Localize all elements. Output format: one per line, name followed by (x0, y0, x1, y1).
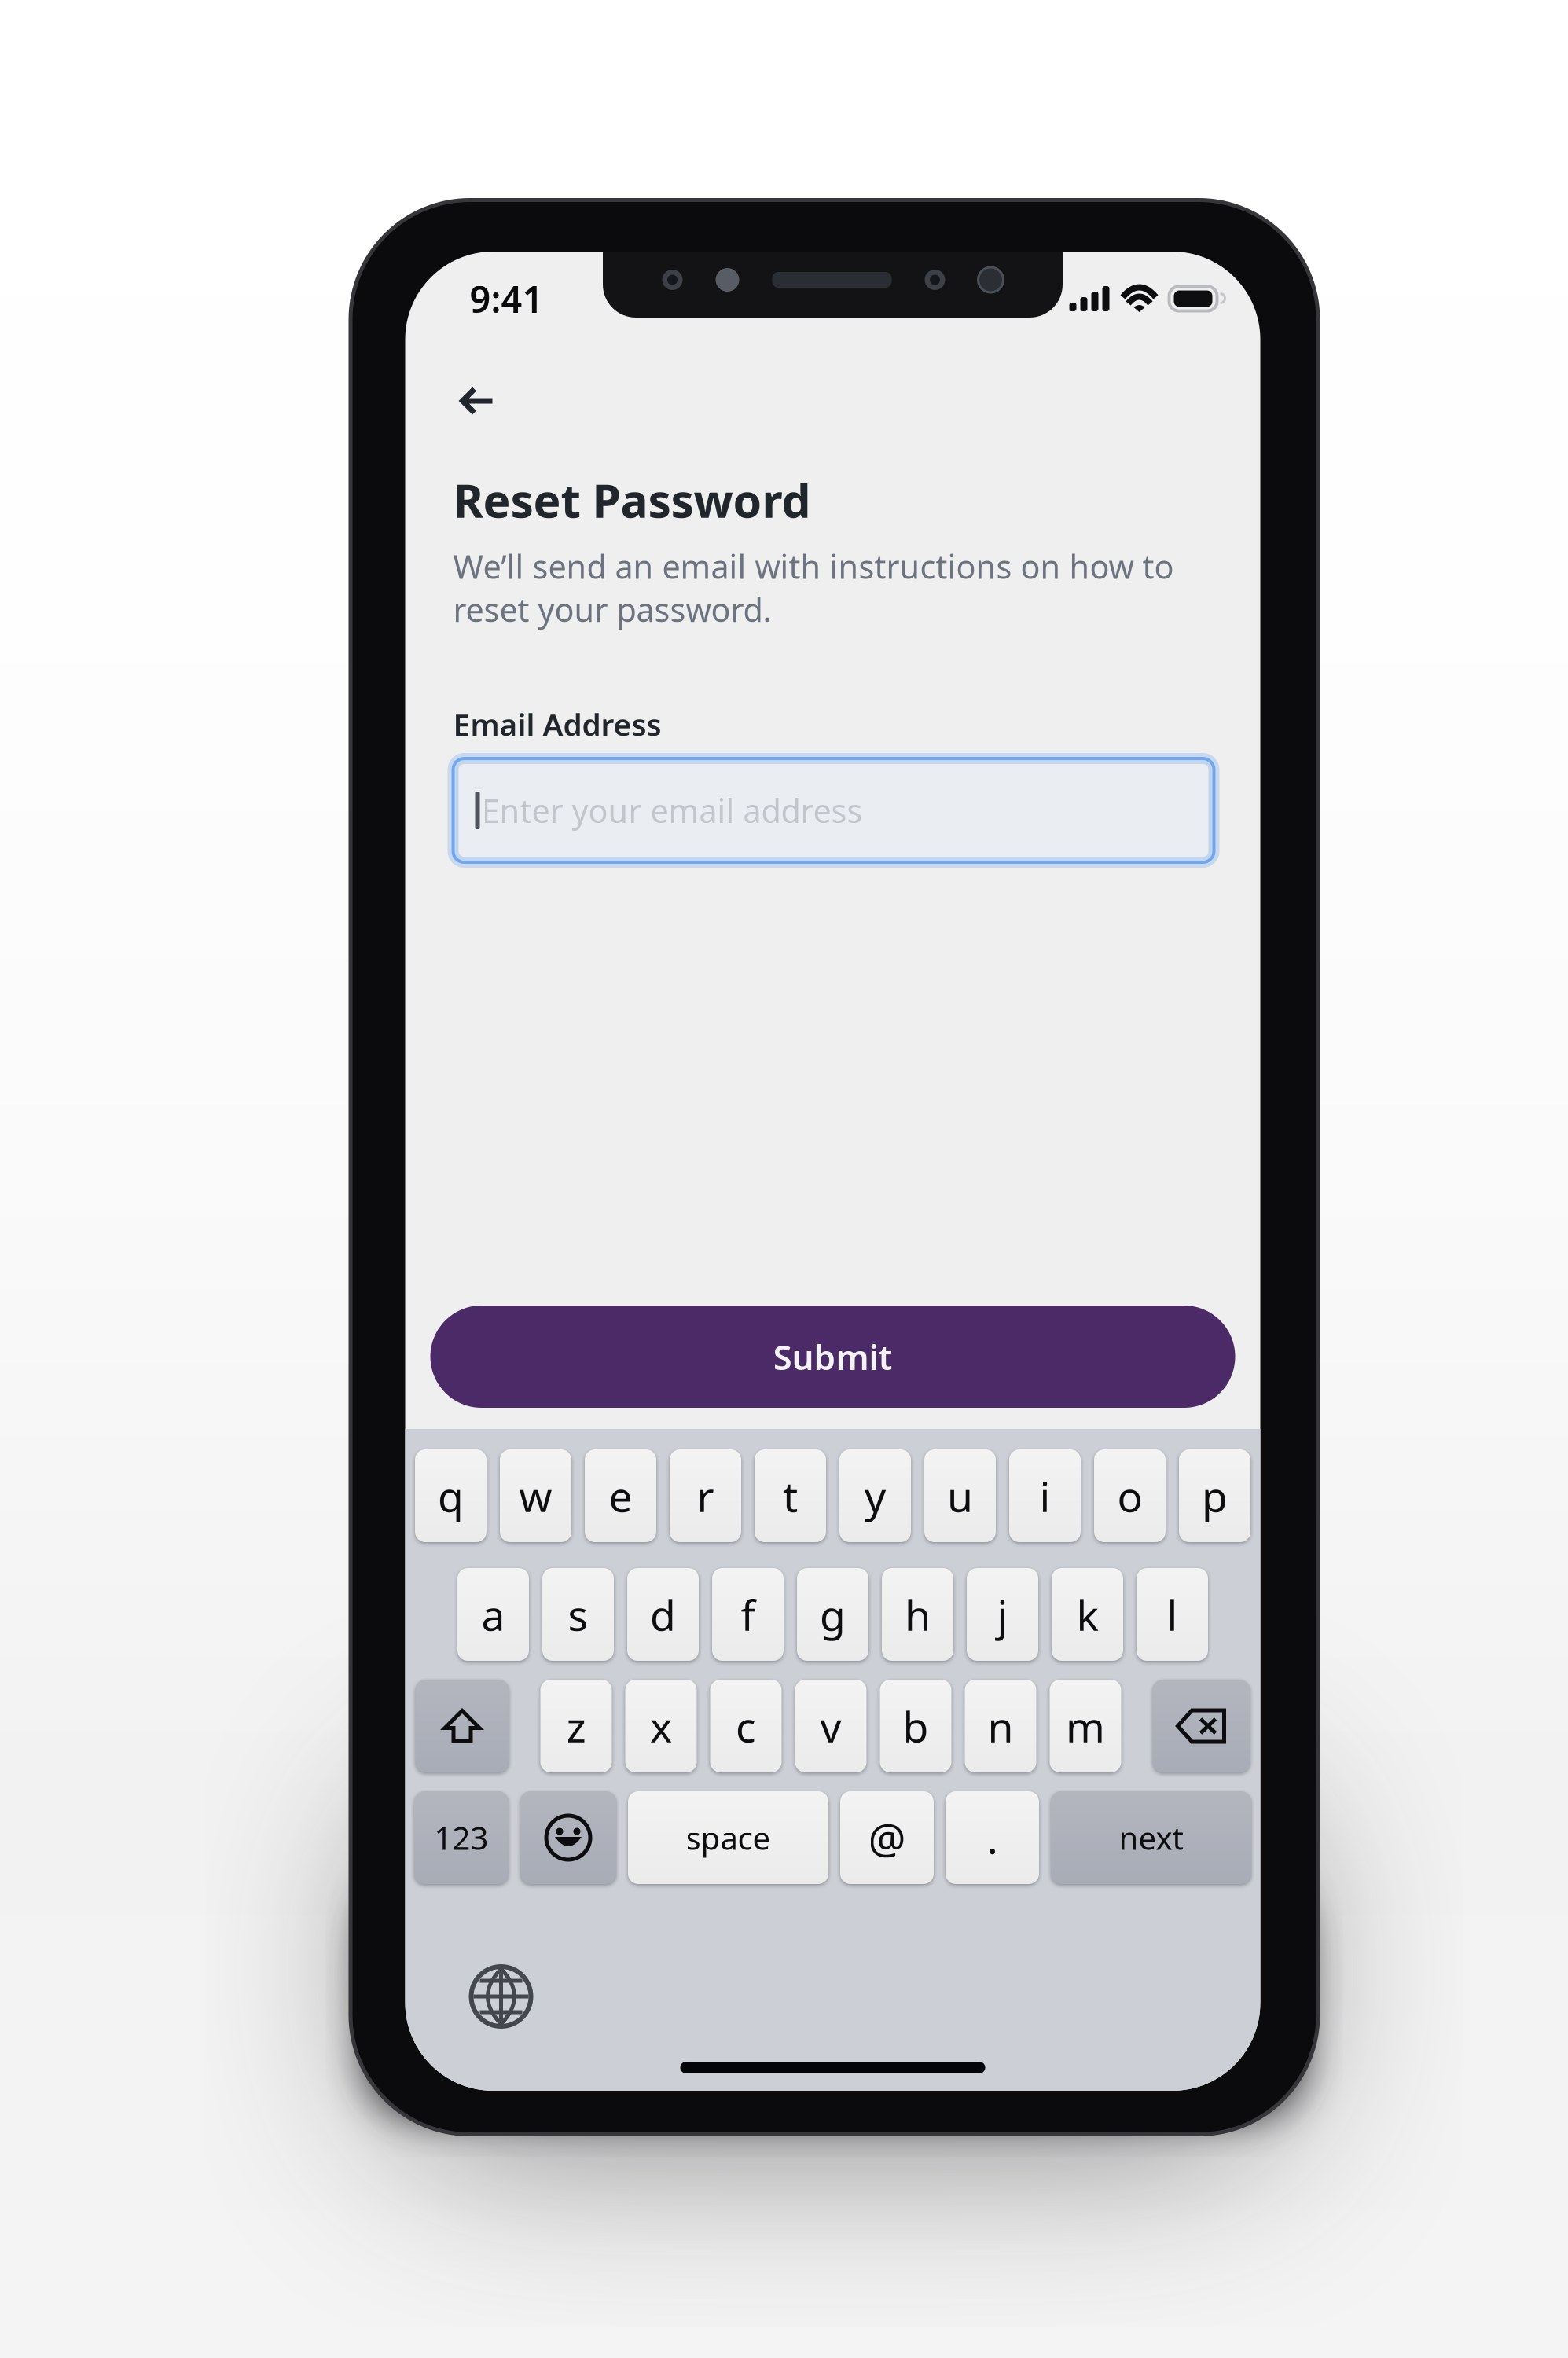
button[interactable]: j (967, 1568, 1038, 1661)
button[interactable]: Shift (415, 1680, 509, 1772)
staticText: i (1039, 1468, 1050, 1524)
button[interactable]: Next keyboard (471, 1967, 531, 2026)
staticText: c (736, 1698, 756, 1754)
staticText: t (783, 1468, 798, 1524)
button[interactable]: b (880, 1680, 951, 1772)
staticText: Enter your email address (481, 789, 863, 832)
button[interactable]: Back (446, 371, 507, 431)
button[interactable]: Emoji (520, 1791, 616, 1884)
button[interactable]: u (924, 1449, 996, 1542)
staticText: next (1119, 1817, 1183, 1858)
staticText: q (438, 1468, 464, 1524)
button[interactable]: p (1179, 1449, 1250, 1542)
staticText: u (947, 1468, 973, 1524)
button[interactable]: n (965, 1680, 1036, 1772)
button[interactable]: v (795, 1680, 867, 1772)
button[interactable]: w (500, 1449, 571, 1542)
button[interactable]: . (946, 1791, 1039, 1884)
staticText: l (1167, 1587, 1178, 1642)
button[interactable]: space (628, 1791, 828, 1884)
staticText: a (481, 1587, 505, 1642)
button[interactable]: c (710, 1680, 782, 1772)
staticText: h (905, 1587, 931, 1642)
staticText: Email Address (453, 704, 661, 744)
button[interactable]: d (627, 1568, 699, 1661)
staticText: k (1076, 1587, 1098, 1642)
button[interactable]: x (625, 1680, 697, 1772)
button[interactable]: h (882, 1568, 953, 1661)
button[interactable]: a (457, 1568, 529, 1661)
button[interactable]: o (1094, 1449, 1166, 1542)
staticText: w (519, 1468, 552, 1524)
staticText: s (568, 1587, 588, 1642)
button[interactable]: g (797, 1568, 868, 1661)
button[interactable]: l (1137, 1568, 1208, 1661)
staticText: v (820, 1698, 841, 1754)
staticText: z (566, 1698, 586, 1754)
staticText: f (741, 1587, 755, 1642)
button[interactable]: f (712, 1568, 784, 1661)
staticText: y (865, 1468, 886, 1524)
staticText: n (988, 1698, 1014, 1754)
staticText: x (650, 1698, 672, 1754)
staticText: space (686, 1817, 771, 1858)
staticText: b (903, 1698, 929, 1754)
staticText: . (987, 1810, 998, 1865)
staticText: r (697, 1468, 714, 1524)
button[interactable]: 123 (414, 1791, 509, 1884)
staticText: 123 (434, 1817, 488, 1858)
staticText: o (1117, 1468, 1142, 1524)
button[interactable]: z (540, 1680, 612, 1772)
staticText: 9:41 (470, 274, 543, 323)
staticText: @ (868, 1810, 906, 1865)
staticText: We’ll send an email with instructions on… (453, 545, 1174, 631)
staticText: p (1202, 1468, 1228, 1524)
button[interactable]: m (1050, 1680, 1121, 1772)
button[interactable]: t (755, 1449, 826, 1542)
button[interactable]: y (839, 1449, 911, 1542)
button[interactable]: next (1051, 1791, 1251, 1884)
button[interactable]: Enter your email address (453, 758, 1214, 862)
button[interactable]: e (585, 1449, 656, 1542)
button[interactable]: k (1052, 1568, 1123, 1661)
button[interactable]: Delete (1153, 1680, 1250, 1772)
button[interactable]: q (415, 1449, 487, 1542)
staticText: Submit (773, 1334, 892, 1380)
button[interactable]: Submit (430, 1306, 1235, 1408)
staticText: Reset Password (453, 469, 811, 530)
staticText: d (650, 1587, 676, 1642)
button[interactable]: r (670, 1449, 741, 1542)
staticText: g (820, 1587, 846, 1642)
staticText: m (1066, 1698, 1105, 1754)
button[interactable]: s (542, 1568, 614, 1661)
button[interactable]: @ (840, 1791, 934, 1884)
button[interactable]: i (1009, 1449, 1081, 1542)
staticText: e (609, 1468, 632, 1524)
staticText: j (997, 1587, 1008, 1642)
